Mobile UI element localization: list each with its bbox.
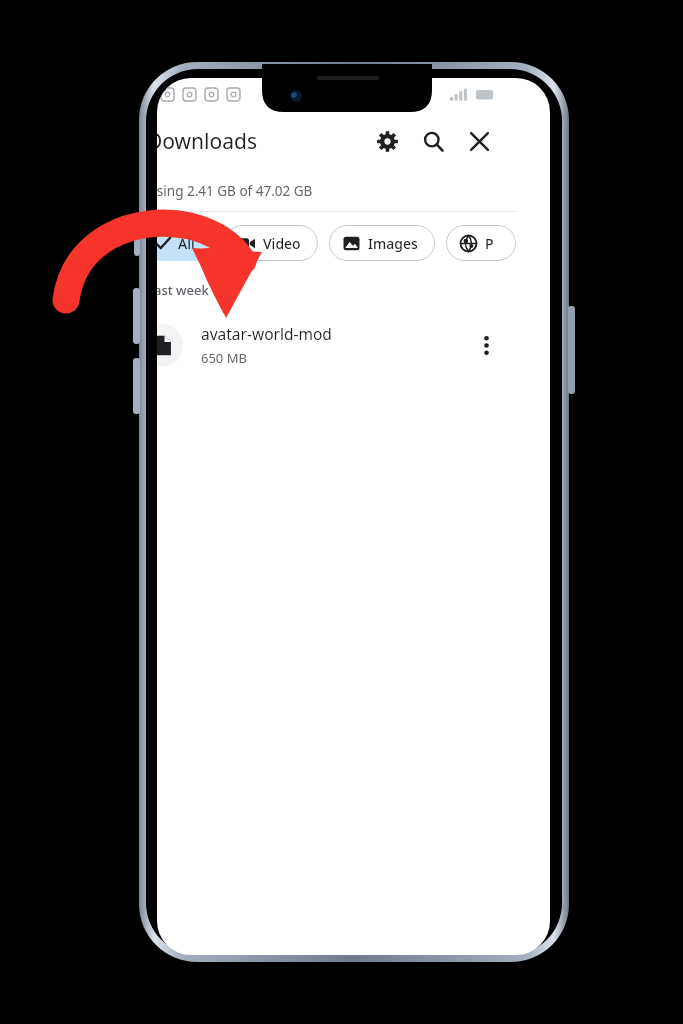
staticText: Pages — [485, 234, 499, 253]
button[interactable]: Search — [410, 118, 456, 164]
staticText: 650 MB — [201, 349, 247, 367]
button[interactable]: Pages — [446, 225, 516, 261]
button[interactable]: Video — [224, 225, 318, 261]
staticText: Video — [263, 234, 301, 253]
staticText: Using 2.41 GB of 47.02 GB — [157, 182, 313, 200]
button[interactable]: Settings — [364, 118, 410, 164]
staticText: Last week — [157, 281, 209, 299]
staticText: Downloads — [157, 127, 257, 156]
button[interactable]: avatar-world-mod — [157, 306, 516, 384]
staticText: Images — [368, 234, 418, 253]
button[interactable]: Close — [456, 118, 502, 164]
button[interactable]: All — [157, 225, 213, 261]
button[interactable]: Images — [329, 225, 435, 261]
staticText: All — [178, 234, 195, 253]
button[interactable]: More options — [464, 323, 508, 367]
staticText: avatar-world-mod — [201, 323, 332, 344]
